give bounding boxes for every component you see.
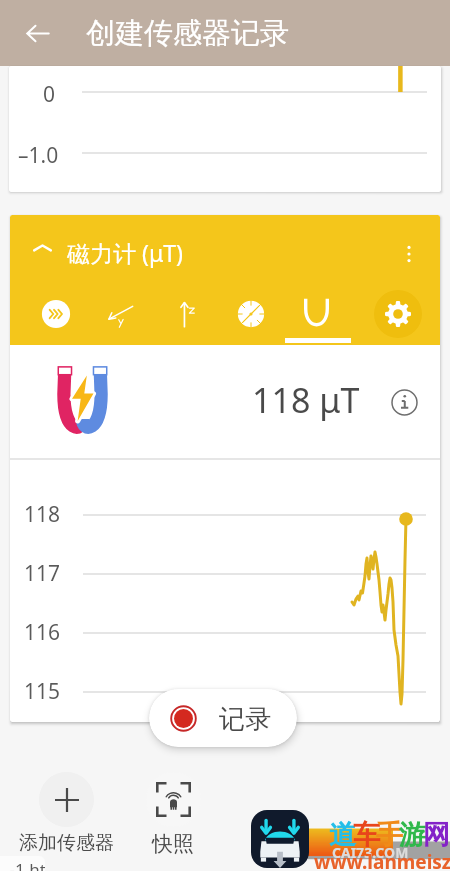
button[interactable]: Sensor tab [32, 290, 80, 338]
button[interactable]: Sensor tab [164, 290, 212, 338]
staticText: 0 [43, 80, 56, 109]
staticText: …-1.html [0, 858, 45, 871]
staticText: CAI73.COM [332, 843, 409, 862]
button[interactable]: Sensor tab [292, 287, 340, 335]
staticText: 添加传感器 [19, 831, 114, 855]
staticText: 118 μT [252, 377, 360, 423]
staticText: 快照 [152, 831, 194, 857]
staticText: 道 [329, 818, 356, 852]
staticText: –1.0 [18, 141, 59, 170]
staticText: 车 [353, 818, 380, 852]
staticText: 记录 [219, 703, 271, 736]
button[interactable]: 记录 [149, 689, 297, 747]
button[interactable]: Settings [374, 290, 422, 338]
button[interactable]: More options [387, 232, 431, 276]
staticText: 创建传感器记录 [86, 15, 289, 52]
staticText: 网 [423, 818, 450, 852]
staticText: 118 [24, 500, 61, 529]
button[interactable]: Back [14, 10, 60, 56]
staticText: 117 [24, 559, 61, 588]
button[interactable]: Information [382, 380, 426, 424]
staticText: 115 [24, 677, 61, 706]
staticText: 磁力计 (μT) [67, 237, 183, 268]
button[interactable]: Sensor tab [227, 290, 275, 338]
button[interactable]: 快照 [132, 772, 214, 857]
staticText: 游 [399, 818, 426, 852]
staticText: 手 [376, 818, 403, 852]
staticText: 116 [24, 618, 61, 647]
button[interactable]: Sensor tab [96, 290, 144, 338]
button[interactable]: Collapse [23, 229, 61, 267]
button[interactable]: 添加传感器 [14, 772, 119, 855]
staticText: www.lanmeisz.com [314, 849, 450, 871]
